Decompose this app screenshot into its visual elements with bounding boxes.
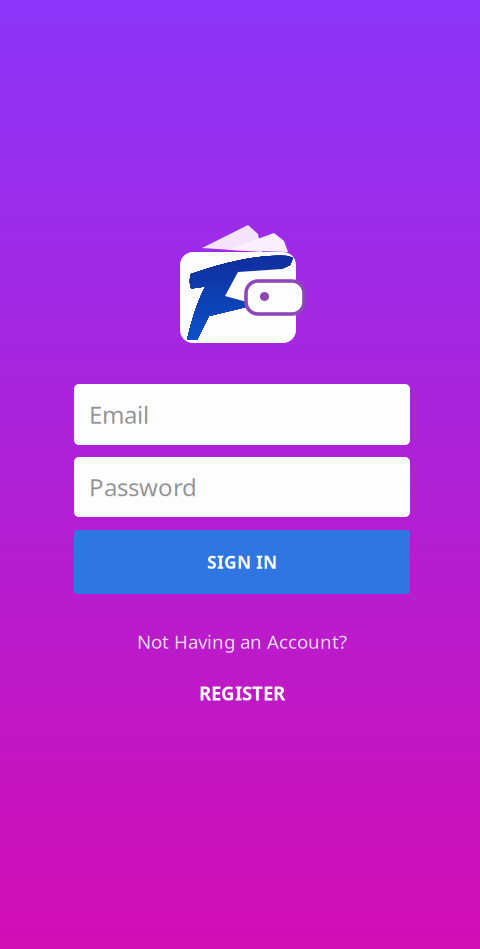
- staticText: Password: [89, 471, 197, 503]
- staticText: Email: [89, 399, 149, 430]
- button[interactable]: Email: [74, 384, 410, 445]
- button[interactable]: SIGN IN: [74, 530, 410, 594]
- staticText: REGISTER: [199, 681, 285, 706]
- button[interactable]: Password: [74, 457, 410, 517]
- staticText: SIGN IN: [207, 550, 277, 573]
- button[interactable]: REGISTER: [175, 676, 309, 711]
- staticText: Not Having an Account?: [137, 629, 347, 654]
